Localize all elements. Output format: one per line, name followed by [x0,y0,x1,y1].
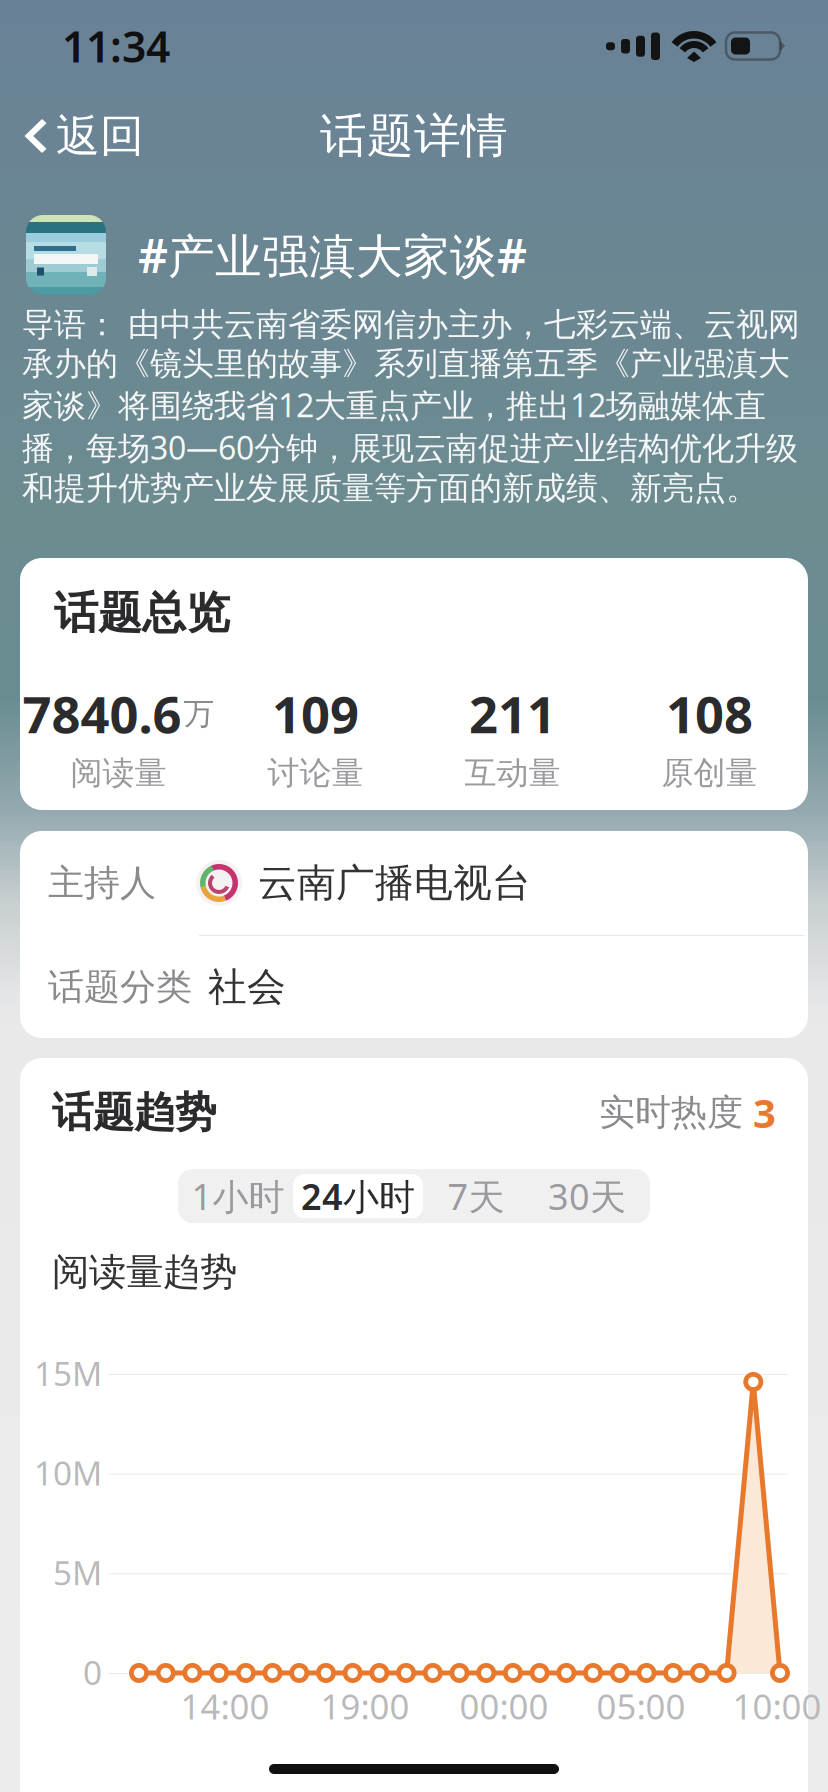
staticText: 阅读量 [70,753,166,793]
staticText: 云南广播电视台 [258,859,531,907]
staticText: 阅读量趋势 [52,1249,237,1295]
staticText: 10M [34,1450,102,1495]
staticText: 15M [34,1351,102,1395]
staticText: 主持人 [48,861,156,905]
staticText: 10:00 [732,1683,821,1729]
staticText: 社会 [208,963,286,1011]
staticText: 0 [83,1650,102,1694]
staticText: 00:00 [459,1683,548,1729]
staticText: 11:34 [62,18,170,74]
staticText: 5M [53,1550,102,1594]
button[interactable]: 7天 [423,1174,529,1218]
staticText: 24小时 [301,1172,415,1220]
staticText: #产业强滇大家谈# [138,224,527,286]
staticText: 30天 [548,1172,626,1220]
button[interactable]: 1小时 [183,1174,293,1218]
staticText: 万 [183,695,214,733]
staticText: 14:00 [180,1683,269,1729]
staticText: 导语： 由中共云南省委网信办主办，七彩云端、云视网承办的《镜头里的故事》系列直播… [22,305,800,508]
button[interactable]: 返回 [0,92,158,180]
staticText: 211 [469,680,556,747]
button[interactable]: 30天 [529,1174,645,1218]
staticText: 实时热度 [599,1090,743,1135]
staticText: 话题总览 [54,586,230,640]
staticText: 3 [753,1086,776,1139]
staticText: 7天 [447,1172,504,1220]
staticText: 7840.6 [22,680,181,747]
staticText: 原创量 [661,753,757,793]
staticText: 05:00 [596,1683,685,1729]
staticText: 讨论量 [267,753,363,793]
staticText: 话题详情 [320,107,508,165]
button[interactable]: 24小时 [293,1174,423,1218]
staticText: 108 [666,680,753,747]
staticText: 话题分类 [48,965,192,1009]
staticText: 19:00 [320,1683,409,1729]
staticText: 互动量 [464,753,560,793]
staticText: 109 [272,680,359,747]
staticText: 话题趋势 [52,1087,216,1138]
staticText: 返回 [56,109,144,163]
staticText: 1小时 [191,1172,284,1220]
